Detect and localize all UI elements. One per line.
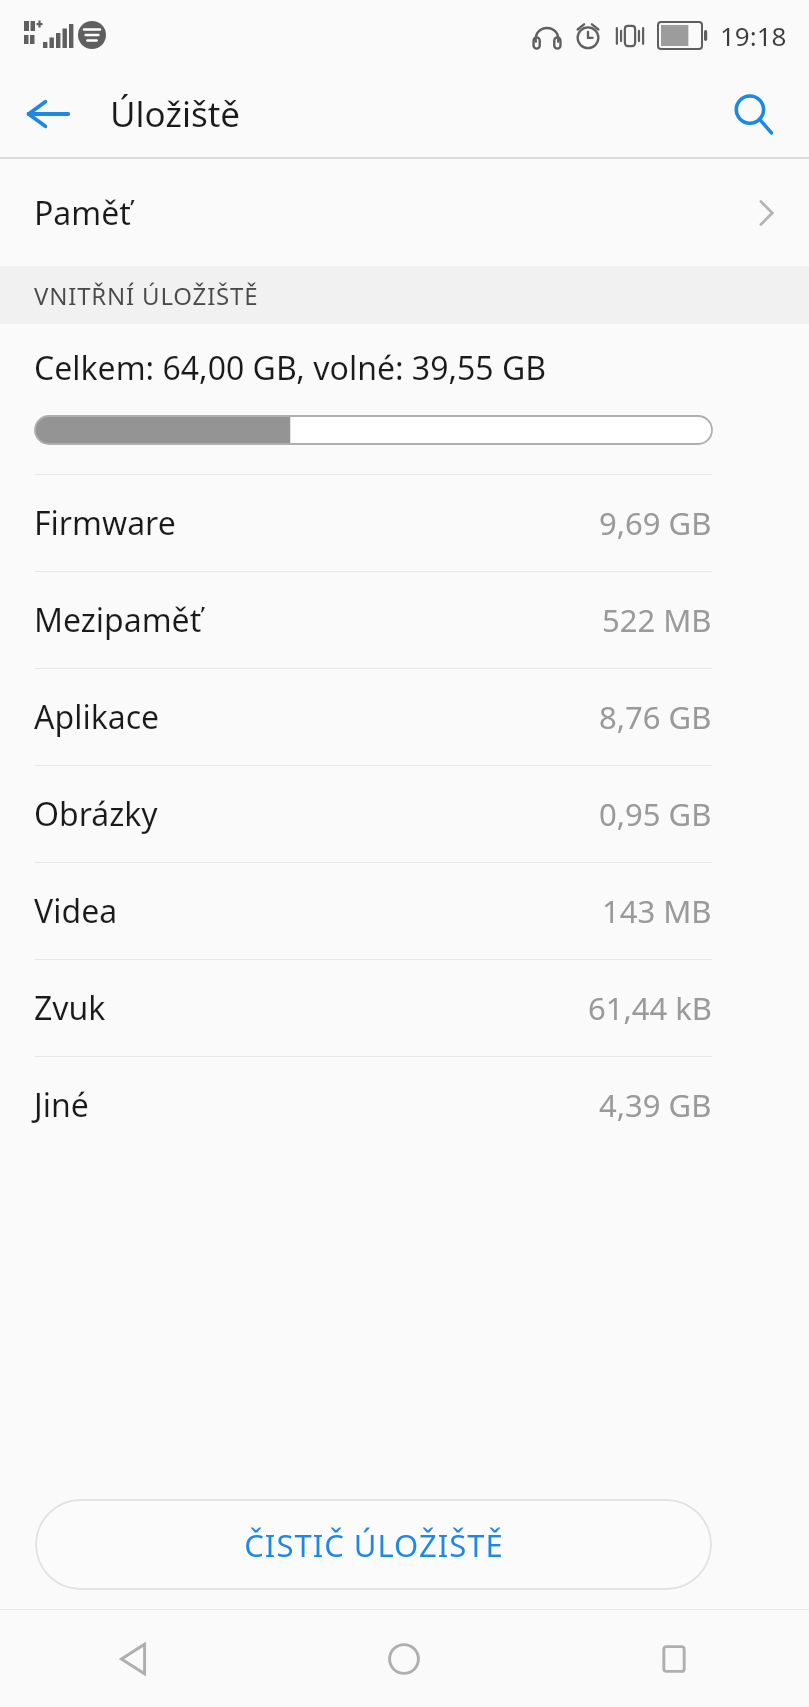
button[interactable]: Home (269, 1610, 539, 1707)
button[interactable]: Jiné (0, 1057, 809, 1153)
staticText: ČISTIČ ÚLOŽIŠTĚ (244, 1524, 504, 1566)
button[interactable]: Firmware (0, 475, 809, 571)
staticText: 143 MB (602, 890, 712, 932)
button[interactable]: Videa (0, 863, 809, 959)
staticText: Zvuk (34, 986, 106, 1030)
button[interactable]: Obrázky (0, 766, 809, 862)
button[interactable]: ČISTIČ ÚLOŽIŠTĚ (35, 1499, 712, 1590)
staticText: 9,69 GB (599, 502, 712, 544)
button[interactable]: Back (0, 1610, 269, 1707)
staticText: Jiné (34, 1083, 89, 1127)
button[interactable]: Search (719, 80, 787, 148)
staticText: 522 MB (602, 599, 712, 641)
staticText: 0,95 GB (599, 793, 712, 835)
staticText: Celkem: 64,00 GB, volné: 39,55 GB (34, 346, 547, 390)
button[interactable]: Zvuk (0, 960, 809, 1056)
button[interactable]: Recent apps (539, 1610, 809, 1707)
staticText: 4,39 GB (599, 1084, 712, 1126)
staticText: Úložiště (110, 90, 241, 138)
staticText: Aplikace (34, 695, 160, 739)
staticText: 19:18 (720, 18, 787, 53)
staticText: Obrázky (34, 792, 158, 836)
staticText: Paměť (34, 191, 131, 235)
staticText: Videa (34, 889, 118, 933)
staticText: Mezipaměť (34, 598, 202, 642)
button[interactable]: Aplikace (0, 669, 809, 765)
staticText: Firmware (34, 501, 176, 545)
staticText: VNITŘNÍ ÚLOŽIŠTĚ (34, 279, 259, 312)
button[interactable]: Mezipaměť (0, 572, 809, 668)
staticText: 61,44 kB (588, 987, 712, 1029)
staticText: 8,76 GB (599, 696, 712, 738)
button[interactable]: Paměť (0, 159, 809, 266)
button[interactable]: Back (14, 80, 82, 148)
